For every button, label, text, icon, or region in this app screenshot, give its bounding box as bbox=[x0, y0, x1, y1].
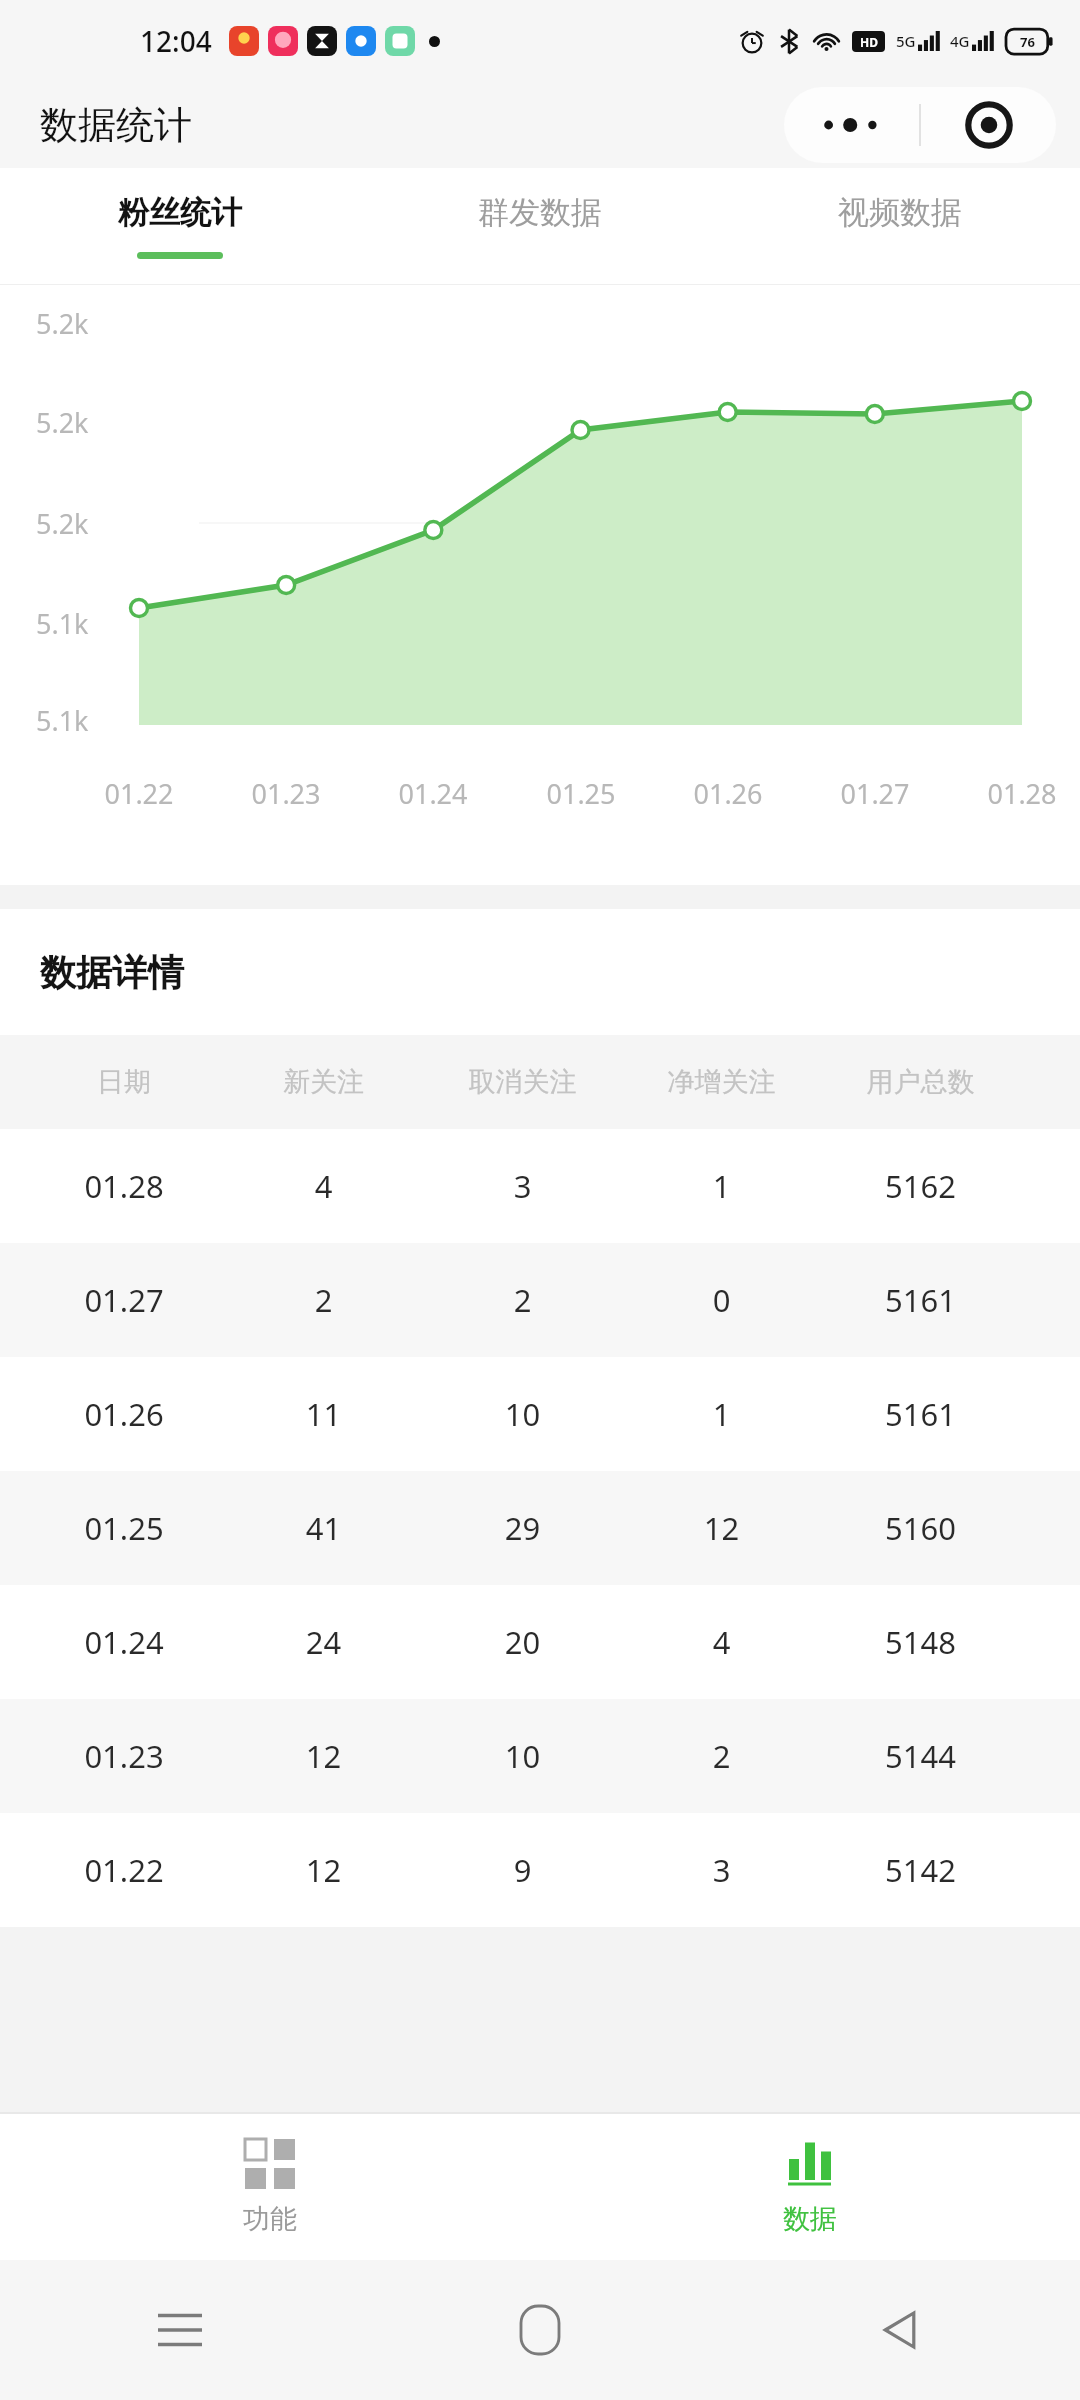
button[interactable]: 数据 bbox=[540, 2114, 1080, 2260]
staticText: 日期 bbox=[24, 1065, 224, 1099]
staticText: 新关注 bbox=[224, 1065, 423, 1099]
staticText: 用户总数 bbox=[821, 1065, 1020, 1099]
staticText: 4 bbox=[224, 1165, 423, 1207]
button[interactable]: 视频数据 bbox=[720, 168, 1080, 284]
staticText: 11 bbox=[224, 1393, 423, 1435]
staticText: 5162 bbox=[821, 1165, 1020, 1207]
button[interactable]: Back bbox=[720, 2260, 1080, 2400]
staticText: 01.24 bbox=[383, 775, 483, 812]
staticText: 01.24 bbox=[24, 1621, 224, 1663]
staticText: 5.2k bbox=[36, 305, 89, 342]
staticText: 数据 bbox=[783, 2202, 837, 2236]
staticText: 10 bbox=[423, 1735, 622, 1777]
staticText: 4 bbox=[622, 1621, 821, 1663]
staticText: 5.1k bbox=[36, 605, 89, 642]
staticText: HD bbox=[860, 34, 878, 50]
staticText: 3 bbox=[622, 1849, 821, 1891]
staticText: 24 bbox=[224, 1621, 423, 1663]
button[interactable]: 01.24 bbox=[0, 1585, 1080, 1699]
staticText: 12 bbox=[224, 1849, 423, 1891]
staticText: 5148 bbox=[821, 1621, 1020, 1663]
staticText: 视频数据 bbox=[838, 193, 962, 232]
staticText: 1 bbox=[622, 1165, 821, 1207]
staticText: 01.28 bbox=[24, 1165, 224, 1207]
staticText: 数据详情 bbox=[40, 950, 184, 995]
staticText: 76 bbox=[1020, 33, 1035, 51]
button[interactable]: 01.27 bbox=[0, 1243, 1080, 1357]
staticText: 9 bbox=[423, 1849, 622, 1891]
staticText: 01.26 bbox=[24, 1393, 224, 1435]
staticText: 2 bbox=[622, 1735, 821, 1777]
staticText: 01.23 bbox=[24, 1735, 224, 1777]
staticText: 5161 bbox=[821, 1279, 1020, 1321]
staticText: 粉丝统计 bbox=[118, 193, 242, 232]
staticText: 2 bbox=[224, 1279, 423, 1321]
staticText: 01.22 bbox=[24, 1849, 224, 1891]
staticText: 41 bbox=[224, 1507, 423, 1549]
button[interactable]: More options bbox=[784, 87, 919, 163]
staticText: 功能 bbox=[243, 2202, 297, 2236]
button[interactable]: 01.28 bbox=[0, 1129, 1080, 1243]
button[interactable]: 群发数据 bbox=[360, 168, 720, 284]
staticText: 12 bbox=[622, 1507, 821, 1549]
staticText: 数据统计 bbox=[40, 101, 192, 149]
staticText: 5161 bbox=[821, 1393, 1020, 1435]
staticText: 群发数据 bbox=[478, 193, 602, 232]
staticText: 5.2k bbox=[36, 404, 89, 441]
button[interactable]: 功能 bbox=[0, 2114, 540, 2260]
staticText: 取消关注 bbox=[423, 1065, 622, 1099]
button[interactable]: 01.22 bbox=[0, 1813, 1080, 1927]
staticText: 01.27 bbox=[825, 775, 925, 812]
staticText: 01.28 bbox=[972, 775, 1072, 812]
staticText: 3 bbox=[423, 1165, 622, 1207]
staticText: 净增关注 bbox=[622, 1065, 821, 1099]
staticText: 5G bbox=[896, 31, 916, 51]
button[interactable]: 01.25 bbox=[0, 1471, 1080, 1585]
staticText: 5.1k bbox=[36, 702, 89, 739]
button[interactable]: Close bbox=[921, 87, 1056, 163]
button[interactable]: Recents bbox=[0, 2260, 360, 2400]
button[interactable]: 01.26 bbox=[0, 1357, 1080, 1471]
staticText: 0 bbox=[622, 1279, 821, 1321]
staticText: 5144 bbox=[821, 1735, 1020, 1777]
button[interactable]: 01.23 bbox=[0, 1699, 1080, 1813]
staticText: 5.2k bbox=[36, 505, 89, 542]
staticText: 01.25 bbox=[24, 1507, 224, 1549]
staticText: 01.22 bbox=[89, 775, 189, 812]
staticText: 01.26 bbox=[678, 775, 778, 812]
staticText: 01.27 bbox=[24, 1279, 224, 1321]
staticText: 2 bbox=[423, 1279, 622, 1321]
staticText: 01.23 bbox=[236, 775, 336, 812]
staticText: 12:04 bbox=[140, 22, 212, 60]
staticText: 5160 bbox=[821, 1507, 1020, 1549]
staticText: 10 bbox=[423, 1393, 622, 1435]
staticText: 12 bbox=[224, 1735, 423, 1777]
button[interactable]: Home bbox=[360, 2260, 720, 2400]
staticText: 01.25 bbox=[531, 775, 631, 812]
staticText: 29 bbox=[423, 1507, 622, 1549]
staticText: 4G bbox=[950, 31, 970, 51]
staticText: 1 bbox=[622, 1393, 821, 1435]
staticText: 20 bbox=[423, 1621, 622, 1663]
staticText: 5142 bbox=[821, 1849, 1020, 1891]
button[interactable]: 粉丝统计 bbox=[0, 168, 360, 284]
